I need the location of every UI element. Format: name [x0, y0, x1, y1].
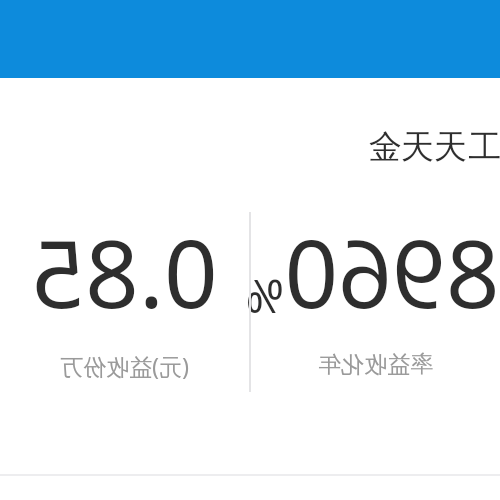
staticText: 率益收化年 — [318, 350, 433, 379]
button[interactable]: 8960 — [251, 190, 500, 404]
button[interactable]: 0.85 — [0, 190, 249, 404]
staticText: 8960 — [284, 208, 500, 336]
staticText: 0.85 — [31, 208, 218, 336]
staticText: % — [251, 264, 284, 327]
staticText: (元)益收份万 — [60, 350, 189, 381]
button[interactable]: 工天天金 — [368, 126, 500, 168]
